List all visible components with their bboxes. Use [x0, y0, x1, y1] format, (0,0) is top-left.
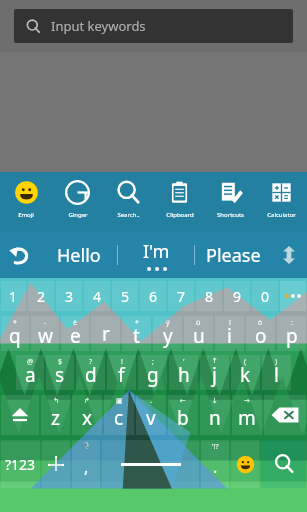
- button[interactable]: ù: [184, 316, 213, 351]
- button[interactable]: ?: [76, 355, 105, 390]
- button[interactable]: Emoji: [0, 172, 52, 232]
- button[interactable]: Search..: [103, 172, 154, 232]
- staticText: ;: [152, 357, 154, 367]
- button[interactable]: r: [91, 316, 120, 351]
- button[interactable]: 5: [112, 281, 138, 311]
- staticText: !: [121, 357, 123, 367]
- button[interactable]: Clipboard: [154, 172, 205, 232]
- button[interactable]: Ginger: [52, 172, 103, 232]
- staticText: ': [183, 357, 185, 367]
- button[interactable]: *: [1, 316, 29, 351]
- staticText: Search..: [117, 211, 140, 219]
- staticText: a: [25, 362, 36, 388]
- staticText: n: [209, 405, 221, 431]
- button[interactable]: 0: [252, 281, 278, 311]
- staticText: 4: [93, 287, 102, 306]
- button[interactable]: ?123: [1, 440, 40, 488]
- staticText: i: [227, 323, 232, 349]
- staticText: u: [193, 323, 205, 349]
- button[interactable]: Emoji: [231, 440, 259, 488]
- button[interactable]: !: [107, 355, 136, 390]
- button[interactable]: 9: [224, 281, 250, 311]
- button[interactable]: ←: [168, 395, 198, 435]
- button[interactable]: ↱: [72, 395, 102, 435]
- button[interactable]: Undo: [0, 232, 40, 278]
- button[interactable]: 1: [1, 281, 26, 311]
- button[interactable]: 7: [168, 281, 194, 311]
- staticText: o: [255, 323, 267, 349]
- button[interactable]: ): [262, 355, 291, 390]
- button[interactable]: 2: [28, 281, 54, 311]
- button[interactable]: →: [232, 395, 262, 435]
- staticText: .: [213, 456, 218, 478]
- staticText: ▣: [116, 397, 123, 405]
- button[interactable]: '!?: [201, 440, 229, 488]
- button[interactable]: ↑: [200, 355, 229, 390]
- button[interactable]: 4: [84, 281, 110, 311]
- staticText: z: [51, 405, 60, 431]
- staticText: 6: [149, 287, 158, 306]
- staticText: →: [244, 397, 250, 405]
- button[interactable]: Search: [261, 440, 306, 488]
- staticText: 2: [37, 287, 46, 306]
- staticText: 🎙: [82, 442, 91, 450]
- staticText: Calculator: [267, 211, 296, 219]
- button[interactable]: @: [16, 355, 44, 390]
- button[interactable]: Shortcuts: [205, 172, 256, 232]
- button[interactable]: *: [122, 316, 151, 351]
- staticText: s: [55, 362, 65, 388]
- button[interactable]: -: [136, 395, 166, 435]
- staticText: t: [133, 323, 140, 349]
- staticText: d: [85, 362, 97, 388]
- button[interactable]: Please: [195, 232, 271, 278]
- button[interactable]: :: [277, 316, 306, 351]
- button[interactable]: ↓: [200, 395, 230, 435]
- staticText: b: [177, 405, 189, 431]
- button[interactable]: -: [31, 316, 59, 351]
- staticText: 1: [9, 287, 18, 306]
- button[interactable]: Expand suggestions: [271, 232, 307, 278]
- staticText: ?: [89, 357, 93, 367]
- staticText: Ginger: [68, 211, 88, 219]
- button[interactable]: 🎙: [72, 440, 100, 488]
- staticText: ↑: [212, 357, 218, 365]
- staticText: Please: [206, 243, 261, 268]
- staticText: g: [147, 362, 159, 388]
- button[interactable]: ↰: [41, 395, 70, 435]
- staticText: 3: [65, 287, 74, 306]
- button[interactable]: 8: [196, 281, 222, 311]
- staticText: @: [27, 357, 34, 367]
- staticText: -: [150, 397, 153, 407]
- button[interactable]: I'm: [118, 232, 194, 278]
- button[interactable]: Calculator: [256, 172, 307, 232]
- staticText: Emoji: [18, 211, 34, 219]
- button[interactable]: Backspace: [264, 395, 306, 435]
- button[interactable]: 6: [140, 281, 166, 311]
- button[interactable]: Input keywords: [14, 9, 293, 43]
- button[interactable]: Hello: [40, 232, 117, 278]
- staticText: 9: [233, 287, 242, 306]
- button[interactable]: Settings: [42, 440, 70, 488]
- button[interactable]: ý: [153, 316, 182, 351]
- button[interactable]: Shift: [1, 395, 39, 435]
- staticText: ï: [229, 318, 231, 328]
- button[interactable]: More: [280, 281, 306, 311]
- button[interactable]: è: [61, 316, 89, 351]
- staticText: ←: [180, 397, 186, 405]
- staticText: ,: [84, 456, 89, 478]
- button[interactable]: ▣: [104, 395, 134, 435]
- staticText: ↰: [53, 397, 59, 405]
- staticText: x: [82, 405, 93, 431]
- button[interactable]: ': [169, 355, 198, 390]
- button[interactable]: 3: [56, 281, 82, 311]
- staticText: ù: [196, 318, 201, 328]
- staticText: ò: [258, 318, 263, 328]
- button[interactable]: ;: [138, 355, 167, 390]
- button[interactable]: Space: [102, 440, 199, 488]
- button[interactable]: $: [46, 355, 74, 390]
- staticText: f: [118, 362, 125, 388]
- staticText: Clipboard: [166, 211, 194, 219]
- button[interactable]: (: [231, 355, 260, 390]
- button[interactable]: ò: [246, 316, 275, 351]
- button[interactable]: ï: [215, 316, 244, 351]
